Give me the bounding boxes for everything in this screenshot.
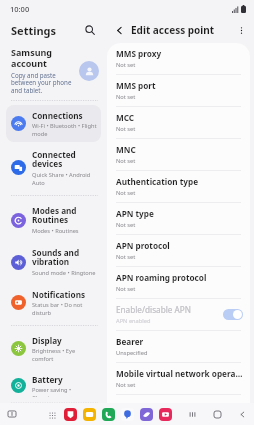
staticText: Not set [116,285,136,293]
staticText: Connected devices [32,149,97,170]
staticText: Power saving • Charging [32,386,97,397]
staticText: Mobile virtual network operator type [116,368,243,379]
button[interactable]: Battery [6,369,101,402]
staticText: APN roaming protocol [116,272,207,283]
staticText: Display [32,335,62,346]
button[interactable]: Bearer [107,331,250,362]
button[interactable]: Enable or disable APN [223,309,243,320]
staticText: Not set [116,93,136,101]
staticText: Not set [116,221,136,229]
button[interactable]: Mobile virtual network operator type [107,363,250,394]
staticText: MNC [116,144,136,155]
button[interactable]: Samsung Notes [64,408,77,421]
staticText: Quick Share • Android Auto [32,171,97,186]
staticText: Not set [116,157,136,165]
staticText: Bearer [116,336,144,347]
button[interactable]: Display [6,330,101,367]
staticText: Modes • Routines [32,227,79,235]
staticText: Battery [32,374,63,385]
button[interactable]: Messages [121,408,134,421]
staticText: Enable/disable APN [116,304,191,315]
button[interactable]: Authentication type [107,171,250,202]
staticText: Authentication type [116,176,199,187]
button[interactable]: MMS proxy [107,43,250,74]
staticText: MMS port [116,80,156,91]
staticText: Not set [116,61,136,69]
staticText: Settings [11,23,57,38]
staticText: Unspecified [116,349,148,357]
staticText: Brightness • Eye comfort shield • Naviga… [32,347,97,362]
staticText: MCC [116,112,135,123]
button[interactable]: YouTube [159,408,172,421]
button[interactable]: More options [233,22,250,39]
staticText: Not set [116,125,136,133]
staticText: Status bar • Do not disturb [32,301,97,316]
button[interactable]: Home [211,408,223,420]
button[interactable]: My Files [83,408,96,421]
button[interactable]: Apps [46,409,58,421]
button[interactable]: APN roaming protocol [107,267,250,298]
button[interactable]: Connected devices [6,144,101,191]
staticText: Wi-Fi • Bluetooth • Flight mode [32,122,97,137]
staticText: 10:00 [10,4,30,14]
button[interactable]: Back [111,22,128,39]
button[interactable]: Internet [140,408,153,421]
button[interactable]: APN protocol [107,235,250,266]
staticText: MMS proxy [116,48,162,59]
button[interactable]: APN type [107,203,250,234]
button[interactable]: Modes and Routines [6,200,101,240]
staticText: Copy and paste between your phone and ta… [11,71,72,95]
button[interactable]: Notifications [6,284,101,321]
button[interactable]: Recents [186,408,198,420]
button[interactable]: Connections [6,105,101,142]
staticText: Not set [116,381,136,389]
button[interactable]: Sounds and vibration [6,242,101,282]
button[interactable]: Enable/disable APN [107,299,250,330]
staticText: Not set [116,253,136,261]
staticText: Not set [116,189,136,197]
button[interactable]: Search [82,22,98,38]
staticText: Connections [32,110,83,121]
staticText: Modes and Routines [32,205,97,226]
button[interactable]: Recent apps [5,407,19,421]
staticText: Sound mode • Ringtone [32,269,96,277]
button[interactable]: Samsung account [0,43,107,100]
staticText: Sounds and vibration [32,247,80,268]
staticText: APN protocol [116,240,170,251]
button[interactable]: MCC [107,107,250,138]
staticText: APN type [116,208,154,219]
button[interactable]: Phone [102,408,115,421]
button[interactable]: MMS port [107,75,250,106]
staticText: APN enabled [116,317,151,325]
button[interactable]: MNC [107,139,250,170]
staticText: Samsung account [11,46,53,69]
button[interactable]: Back [236,408,248,420]
staticText: Notifications [32,289,86,300]
staticText: Edit access point [131,23,215,37]
